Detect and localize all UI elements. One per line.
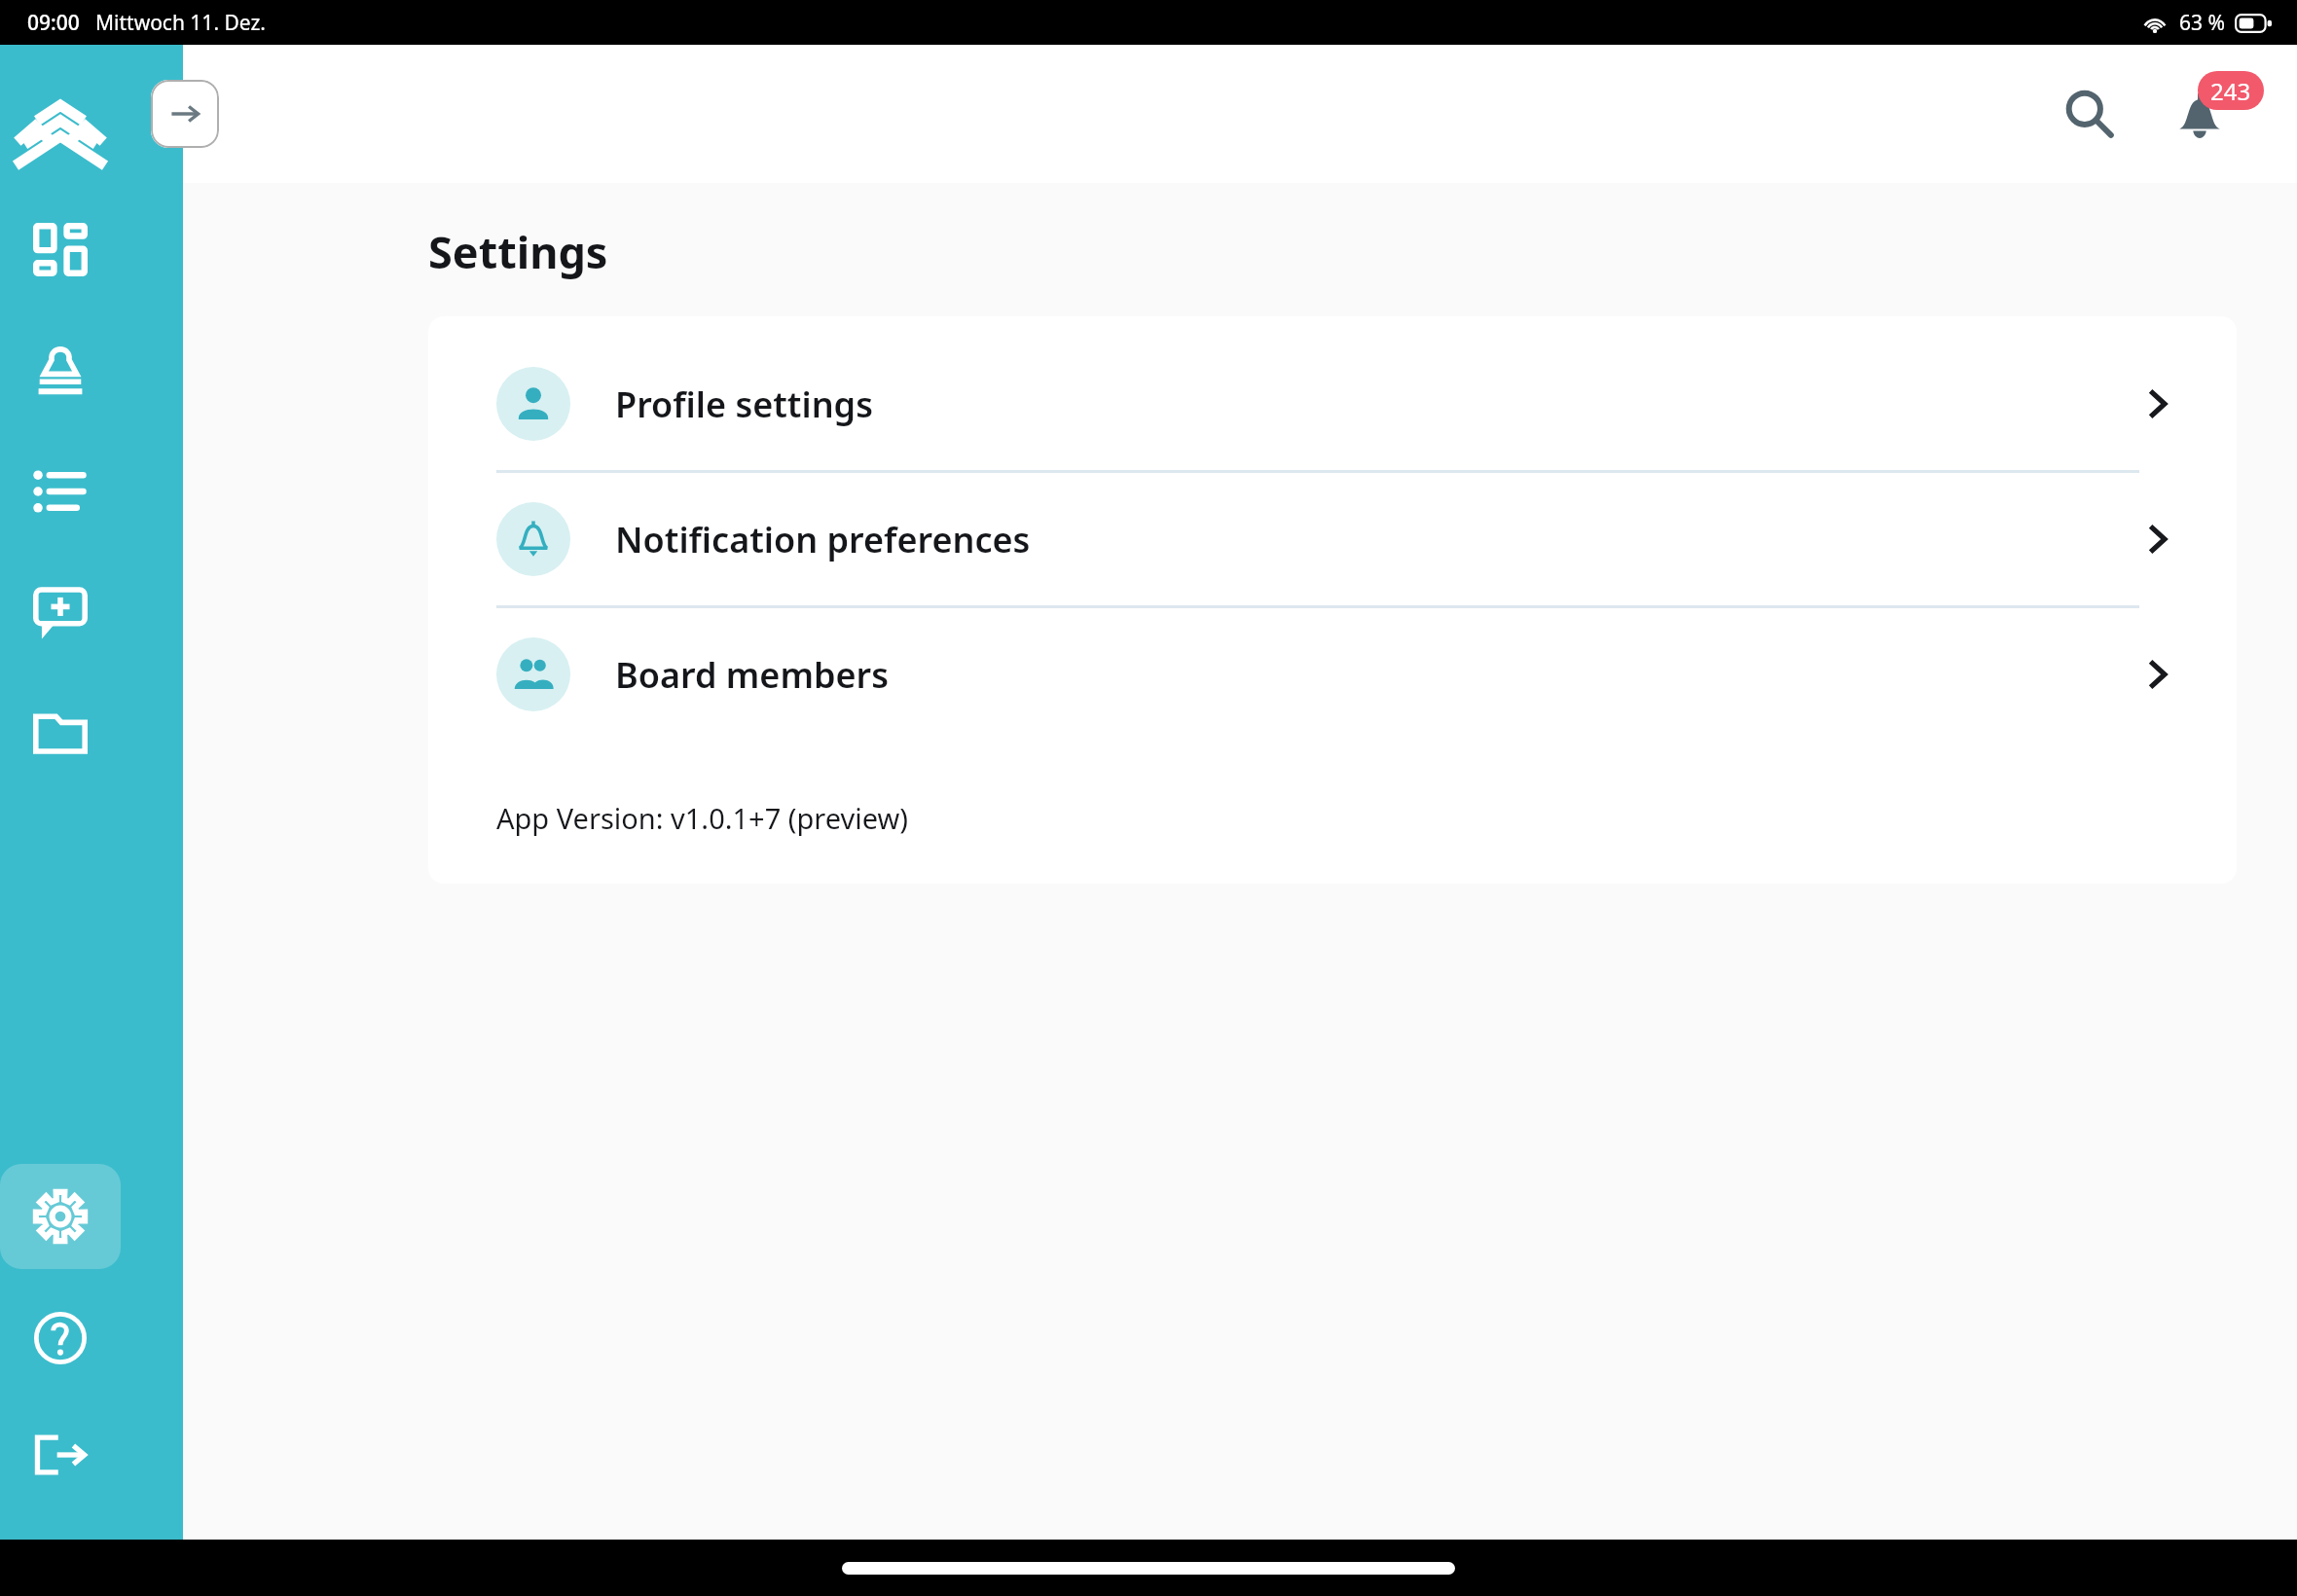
button[interactable]: Board members bbox=[428, 608, 2237, 741]
staticText: 09:00 bbox=[27, 9, 80, 37]
staticText: Notification preferences bbox=[615, 516, 1031, 563]
button[interactable]: Documents bbox=[6, 693, 115, 773]
staticText: Mittwoch 11. Dez. bbox=[95, 9, 266, 37]
button[interactable]: Approvals bbox=[6, 331, 115, 411]
button[interactable]: Profile settings bbox=[428, 338, 2237, 470]
staticText: 63 % bbox=[2179, 9, 2225, 37]
button[interactable]: New message bbox=[6, 572, 115, 652]
button[interactable]: Expand navigation bbox=[151, 80, 219, 148]
staticText: Settings bbox=[428, 222, 608, 281]
button[interactable]: Help bbox=[6, 1298, 115, 1378]
staticText: Board members bbox=[615, 651, 889, 699]
button[interactable]: Notification preferences bbox=[428, 473, 2237, 605]
button[interactable]: Home logo bbox=[10, 91, 111, 175]
button[interactable]: Dashboard bbox=[6, 210, 115, 290]
staticText: 243 bbox=[2210, 75, 2251, 107]
staticText: App Version: v1.0.1+7 (preview) bbox=[496, 799, 908, 837]
button[interactable]: Log out bbox=[6, 1415, 115, 1495]
staticText: Profile settings bbox=[615, 381, 873, 428]
button[interactable]: Search bbox=[2048, 72, 2132, 156]
button[interactable]: Settings bbox=[0, 1164, 121, 1269]
button[interactable]: Notifications, 243 unread bbox=[2153, 67, 2246, 161]
button[interactable]: Tasks bbox=[6, 452, 115, 531]
